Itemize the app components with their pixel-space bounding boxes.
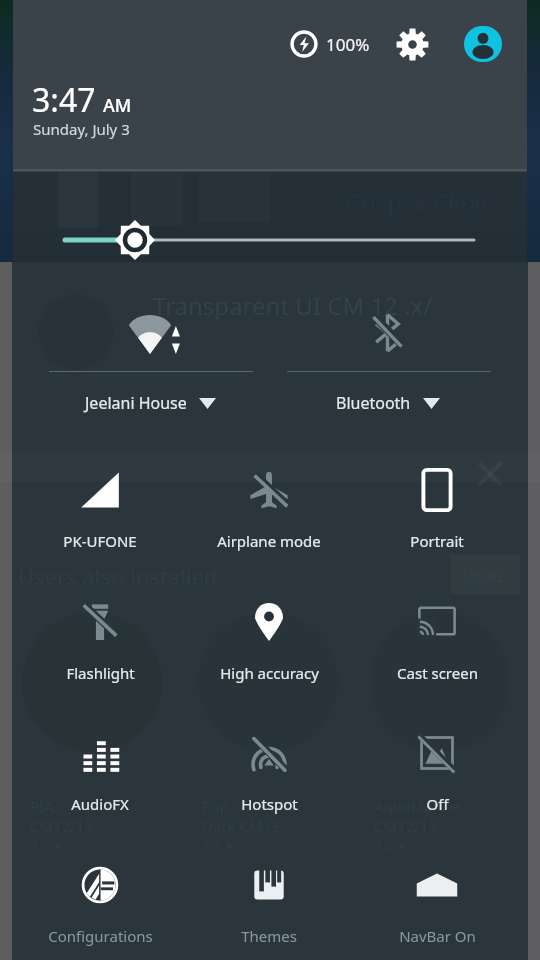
button[interactable]: User profile <box>464 26 502 62</box>
staticText: AquaMarine CM12/13 <box>374 796 461 836</box>
button[interactable]: Off <box>353 713 521 825</box>
button[interactable]: Portrait <box>353 450 521 562</box>
button[interactable]: Cast screen <box>353 582 521 694</box>
staticText: PIA CM12/13 <box>30 796 93 836</box>
button[interactable]: Configurations <box>16 845 184 957</box>
staticText: Sunday, July 3 <box>33 119 130 139</box>
button[interactable]: Jeelani House <box>28 300 272 420</box>
button[interactable]: Airplane mode <box>185 450 353 562</box>
staticText: AM <box>103 93 132 118</box>
staticText: Portrait <box>410 531 464 551</box>
staticText: Flashlight <box>66 663 135 683</box>
button[interactable]: Bluetooth <box>266 300 510 420</box>
staticText: High accuracy <box>220 663 319 683</box>
staticText: AudioFX <box>71 794 129 814</box>
staticText: PK-UFONE <box>63 531 137 551</box>
button[interactable]: NavBar On <box>353 845 521 957</box>
button[interactable]: AudioFX <box>16 713 184 825</box>
staticText: Off <box>426 794 449 814</box>
button[interactable]: PK-UFONE <box>16 450 184 562</box>
staticText: Configurations <box>48 926 153 946</box>
button[interactable]: Themes <box>185 845 353 957</box>
staticText: Cast screen <box>397 663 478 683</box>
staticText: Hotspot <box>241 794 298 814</box>
staticText: 100% <box>326 33 370 56</box>
button[interactable]: High accuracy <box>185 582 353 694</box>
staticText: Themes <box>241 926 297 946</box>
staticText: NavBar On <box>399 926 476 946</box>
button[interactable]: Settings <box>394 26 430 62</box>
button[interactable]: Battery 100 percent <box>291 26 370 62</box>
staticText: Transparent UI CM 12 .x/ <box>153 289 433 322</box>
button[interactable]: Hotspot <box>185 713 353 825</box>
staticText: Jeelani House <box>85 392 187 414</box>
staticText: Eup Dark CM13 <box>202 796 280 836</box>
staticText: 3:47 <box>32 78 96 122</box>
button[interactable]: Flashlight <box>16 582 184 694</box>
staticText: Airplane mode <box>217 531 321 551</box>
staticText: Bluetooth <box>336 392 411 414</box>
